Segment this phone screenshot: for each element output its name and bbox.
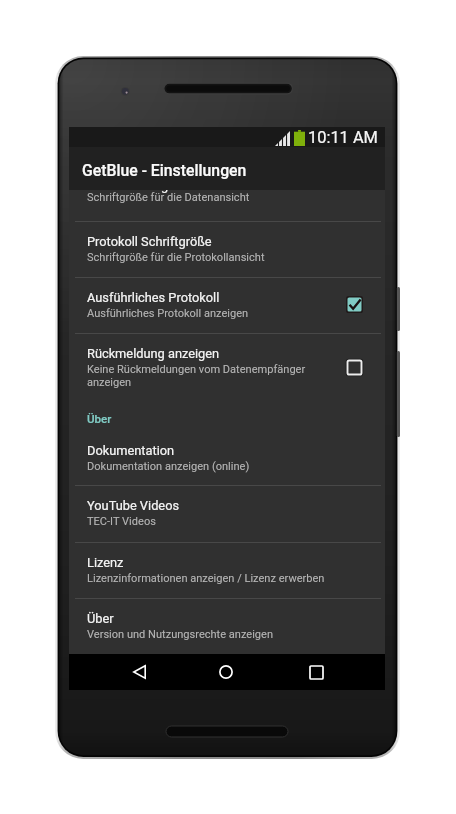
staticText: Daten Schriftgröße — [87, 190, 195, 193]
staticText: TEC-IT Videos — [87, 515, 156, 528]
staticText: Protokoll Schriftgröße — [87, 234, 212, 249]
button[interactable]: Recents — [298, 654, 334, 690]
staticText: Ausführliches Protokoll anzeigen — [87, 307, 249, 320]
button[interactable]: Checked — [346, 296, 363, 313]
staticText: Über — [87, 412, 112, 426]
button[interactable]: Protokoll Schriftgröße — [69, 221, 385, 263]
button[interactable]: Home — [208, 654, 244, 690]
button[interactable]: Rückmeldung anzeigen — [69, 333, 385, 389]
staticText: Über — [87, 611, 114, 626]
staticText: Dokumentation anzeigen (online) — [87, 460, 250, 473]
button[interactable]: Über — [69, 598, 385, 640]
staticText: YouTube Videos — [87, 498, 180, 513]
staticText: GetBlue - Einstellungen — [82, 161, 247, 180]
staticText: Keine Rückmeldungen vom Datenempfänger — [87, 363, 306, 376]
button[interactable]: Ausführliches Protokoll — [69, 277, 385, 319]
button[interactable]: Lizenz — [69, 542, 385, 584]
staticText: Lizenzinformationen anzeigen / Lizenz er… — [87, 572, 325, 585]
staticText: Lizenz — [87, 555, 124, 570]
button[interactable]: YouTube Videos — [69, 485, 385, 527]
staticText: Ausführliches Protokoll — [87, 290, 220, 305]
staticText: Schriftgröße für die Datenansicht — [87, 191, 250, 204]
staticText: Version und Nutzungsrechte anzeigen — [87, 628, 274, 641]
staticText: anzeigen — [87, 376, 132, 389]
button[interactable]: Back — [121, 654, 157, 690]
staticText: Rückmeldung anzeigen — [87, 346, 220, 361]
staticText: Schriftgröße für die Protokollansicht — [87, 251, 265, 264]
button[interactable]: Unchecked — [346, 359, 363, 376]
button[interactable]: Dokumentation — [69, 430, 385, 472]
staticText: Dokumentation — [87, 443, 175, 458]
staticText: 10:11 AM — [308, 128, 378, 147]
